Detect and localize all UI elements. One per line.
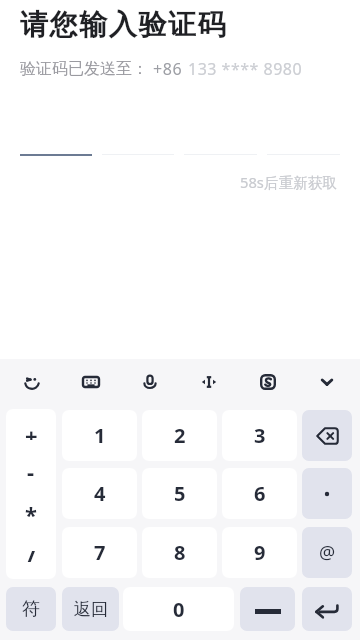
staticText: 9 <box>254 539 266 566</box>
staticText: 58s后重新获取 <box>240 172 338 192</box>
staticText: - <box>27 456 35 476</box>
button[interactable]: Enter <box>302 587 352 631</box>
staticText: 符 <box>22 598 40 621</box>
staticText: @ <box>319 540 336 565</box>
button[interactable]: 0 <box>123 587 234 631</box>
staticText: 8 <box>174 539 186 566</box>
button[interactable]: 6 <box>222 468 297 519</box>
button[interactable]: 3 <box>222 410 297 461</box>
button[interactable]: Hide keyboard <box>307 362 347 402</box>
button[interactable]: Space <box>240 587 295 631</box>
button[interactable]: Move cursor <box>189 362 229 402</box>
staticText: 6 <box>254 480 266 507</box>
button[interactable]: 7 <box>62 527 137 578</box>
button[interactable]: Keyboard layout <box>71 362 111 402</box>
staticText: * <box>25 499 37 519</box>
button[interactable]: 符 <box>6 587 56 631</box>
staticText: +86 <box>153 58 183 80</box>
staticText: 返回 <box>74 599 108 620</box>
button[interactable]: Voice input <box>130 362 170 402</box>
staticText: 4 <box>94 480 106 507</box>
button[interactable]: 4 <box>62 468 137 519</box>
staticText: 验证码已发送至： <box>20 59 148 79</box>
staticText: + <box>25 420 38 440</box>
button[interactable]: Backspace <box>302 410 352 461</box>
button[interactable]: Emoji <box>12 362 52 402</box>
button[interactable]: 返回 <box>62 587 119 631</box>
button[interactable]: @ <box>302 527 352 578</box>
staticText: 0 <box>173 596 185 623</box>
staticText: 1 <box>94 422 106 449</box>
button[interactable]: 5 <box>142 468 217 519</box>
staticText: 133 **** 8980 <box>188 58 303 80</box>
staticText: 5 <box>174 480 186 507</box>
button[interactable]: 58s后重新获取 <box>240 172 338 192</box>
button[interactable]: plus minus times divide <box>6 409 56 579</box>
staticText: 2 <box>174 422 186 449</box>
staticText: / <box>26 542 36 562</box>
staticText: 3 <box>254 422 266 449</box>
button[interactable]: 9 <box>222 527 297 578</box>
button[interactable]: . <box>302 468 352 519</box>
button[interactable]: Sogou input <box>248 362 288 402</box>
button[interactable]: 2 <box>142 410 217 461</box>
staticText: 请您输入验证码 <box>20 7 228 42</box>
button[interactable]: 1 <box>62 410 137 461</box>
staticText: 7 <box>94 539 106 566</box>
button[interactable]: 8 <box>142 527 217 578</box>
